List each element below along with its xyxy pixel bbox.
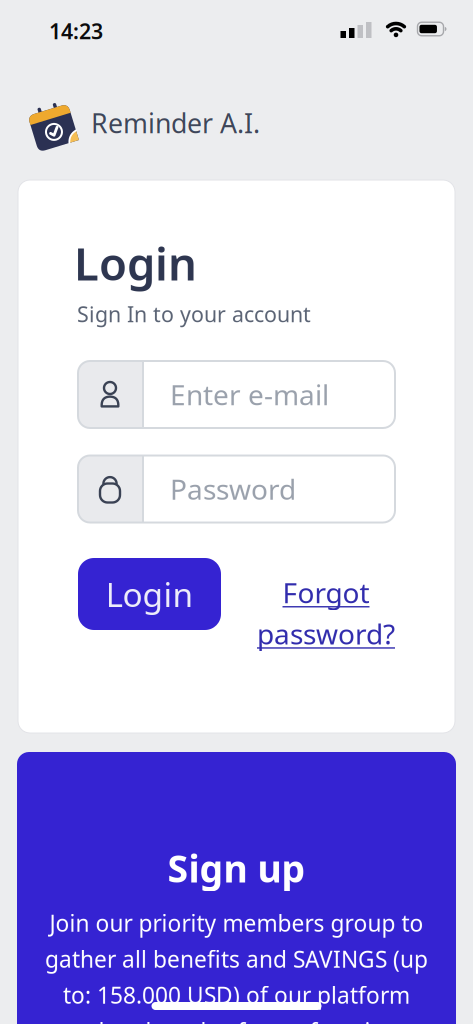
staticText: Forgot [282,574,369,611]
staticText: Password [170,470,296,508]
staticText: password? [257,615,395,652]
staticText: and gather also future functions [63,1016,409,1024]
staticText: Sign up [167,843,305,893]
staticText: Reminder A.I. [91,105,260,141]
staticText: gather all benefits and SAVINGS (up [45,944,428,974]
button[interactable]: Enter e-mail [78,361,395,428]
staticText: Enter e-mail [170,376,329,413]
button[interactable]: Forgot [257,574,395,652]
staticText: 14:23 [49,17,103,45]
staticText: to: 158.000 USD) of our platform [63,980,410,1010]
staticText: Login [105,572,193,616]
staticText: Login [74,233,197,293]
button[interactable]: Password [78,455,395,522]
staticText: Join our priority members group to [49,908,423,938]
button[interactable]: Login [78,558,221,630]
staticText: Sign In to your account [77,300,311,328]
